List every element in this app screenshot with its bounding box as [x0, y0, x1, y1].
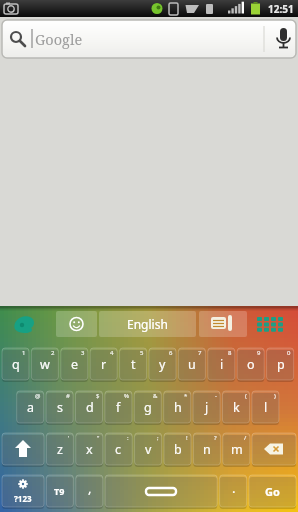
button[interactable]: o — [237, 348, 264, 380]
button[interactable]: v — [135, 433, 162, 465]
button[interactable]: n — [193, 433, 220, 465]
staticText: y — [159, 356, 166, 373]
staticText: z — [57, 441, 63, 458]
staticText: 1 — [22, 349, 26, 357]
button[interactable]: T9 — [46, 475, 73, 507]
staticText: i — [220, 356, 224, 373]
button[interactable] — [199, 311, 247, 337]
staticText: ' — [68, 434, 70, 442]
button[interactable] — [10, 311, 50, 337]
staticText: o — [247, 356, 255, 373]
button[interactable]: . — [220, 475, 247, 507]
staticText: 9 — [257, 349, 261, 357]
staticText: 3 — [81, 349, 85, 357]
staticText: 4 — [110, 349, 114, 357]
staticText: v — [145, 441, 152, 458]
staticText: x — [86, 441, 93, 458]
button[interactable]: c — [105, 433, 132, 465]
staticText: , — [88, 479, 92, 497]
button[interactable]: j — [193, 391, 220, 423]
button[interactable]: Google — [2, 20, 296, 58]
staticText: j — [205, 399, 209, 416]
button[interactable]: i — [208, 348, 235, 380]
button[interactable]: h — [164, 391, 191, 423]
button[interactable]: e — [61, 348, 88, 380]
staticText: n — [203, 441, 211, 458]
staticText: ) — [274, 392, 276, 400]
staticText: @ — [35, 392, 41, 400]
staticText: " — [97, 434, 100, 442]
staticText: f — [116, 399, 121, 416]
button[interactable]: y — [149, 348, 176, 380]
button[interactable]: g — [134, 391, 161, 423]
button[interactable]: English — [99, 311, 196, 337]
staticText: a — [27, 399, 35, 416]
button[interactable]: , — [76, 475, 103, 507]
staticText: * — [184, 392, 188, 400]
staticText: 6 — [169, 349, 173, 357]
staticText: g — [144, 399, 152, 416]
staticText: $ — [96, 392, 100, 400]
button[interactable]: z — [46, 433, 73, 465]
button[interactable]: s — [46, 391, 73, 423]
button[interactable]: w — [31, 348, 58, 380]
button[interactable]: p — [267, 348, 294, 380]
staticText: Google — [35, 29, 83, 49]
staticText: w — [40, 356, 50, 373]
staticText: ; — [157, 434, 159, 442]
button[interactable]: t — [120, 348, 147, 380]
button[interactable]: u — [178, 348, 205, 380]
staticText: Go — [265, 484, 280, 499]
staticText: % — [124, 392, 129, 400]
staticText: u — [188, 356, 196, 373]
staticText: e — [71, 356, 79, 373]
staticText: : — [127, 434, 129, 442]
staticText: 12:51 — [268, 2, 294, 16]
staticText: k — [233, 399, 240, 416]
staticText: p — [277, 356, 285, 373]
button[interactable]: a — [17, 391, 44, 423]
button[interactable]: d — [76, 391, 103, 423]
staticText: 8 — [228, 349, 232, 357]
staticText: English — [127, 316, 168, 332]
staticText: ?123 — [14, 493, 32, 504]
button[interactable]: l — [252, 391, 279, 423]
staticText: b — [174, 441, 182, 458]
staticText: 2 — [51, 349, 55, 357]
button[interactable]: k — [223, 391, 250, 423]
staticText: ? — [214, 434, 217, 442]
staticText: 7 — [198, 349, 202, 357]
staticText: - — [215, 392, 217, 400]
staticText: . — [232, 479, 236, 497]
staticText: / — [244, 434, 247, 442]
button[interactable] — [252, 433, 296, 465]
button[interactable]: x — [76, 433, 103, 465]
staticText: t — [131, 356, 136, 373]
button[interactable]: m — [223, 433, 250, 465]
staticText: 5 — [140, 349, 144, 357]
staticText: h — [174, 399, 182, 416]
staticText: ( — [245, 392, 247, 400]
button[interactable] — [56, 311, 97, 337]
button[interactable]: b — [164, 433, 191, 465]
button[interactable]: ?123 — [2, 475, 44, 507]
staticText: c — [115, 441, 122, 458]
button[interactable] — [250, 311, 294, 337]
staticText: # — [66, 392, 70, 400]
staticText: m — [231, 441, 243, 458]
button[interactable]: f — [105, 391, 132, 423]
staticText: 0 — [287, 349, 291, 357]
staticText: & — [153, 392, 158, 400]
staticText: r — [101, 356, 107, 373]
staticText: ! — [186, 434, 188, 442]
button[interactable]: q — [2, 348, 29, 380]
button[interactable] — [105, 475, 217, 507]
staticText: T9 — [54, 485, 65, 497]
button[interactable]: r — [90, 348, 117, 380]
button[interactable] — [2, 433, 44, 465]
staticText: l — [264, 399, 268, 416]
staticText: d — [86, 399, 94, 416]
staticText: q — [12, 356, 20, 373]
button[interactable]: Go — [249, 475, 296, 507]
staticText: s — [57, 399, 63, 416]
